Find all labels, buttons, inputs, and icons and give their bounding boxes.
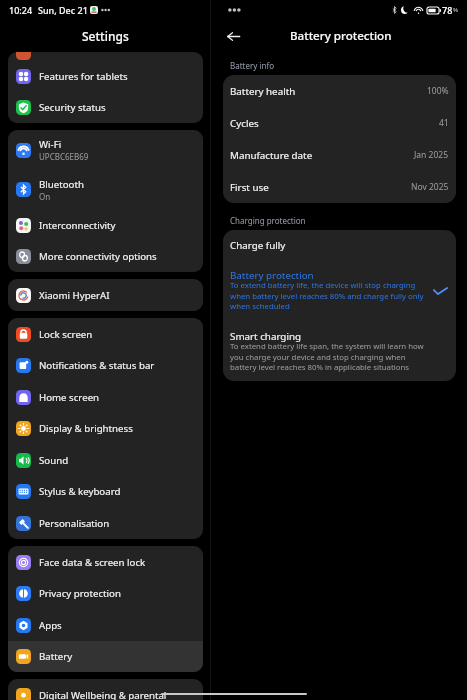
staticText: 100% xyxy=(427,85,449,97)
button[interactable]: Xiaomi HyperAI xyxy=(8,279,203,311)
button[interactable]: Battery xyxy=(8,641,203,672)
button[interactable]: Features for tablets xyxy=(8,60,203,92)
staticText: 41 xyxy=(439,117,449,129)
button[interactable]: First use xyxy=(223,171,456,203)
staticText: Charging protection xyxy=(230,215,306,226)
button[interactable]: Display & brightness xyxy=(8,413,203,444)
button[interactable]: Manufacture date xyxy=(223,139,456,171)
staticText: Settings xyxy=(82,28,129,44)
staticText: Personalisation xyxy=(39,517,110,530)
staticText: Interconnectivity xyxy=(39,219,116,232)
staticText: UPCBC6EB69 xyxy=(39,151,89,162)
staticText: Sound xyxy=(39,454,69,467)
staticText: Battery info xyxy=(230,60,275,71)
button[interactable]: More connectivity options xyxy=(8,241,203,272)
button[interactable] xyxy=(8,52,203,60)
staticText: Smart charging xyxy=(230,330,301,343)
button[interactable]: Face data & screen lock xyxy=(8,546,203,578)
staticText: Nov 2025 xyxy=(411,181,449,193)
staticText: 10:24 xyxy=(9,4,33,16)
staticText: Features for tablets xyxy=(39,70,128,83)
staticText: Stylus & keyboard xyxy=(39,485,121,498)
staticText: Xiaomi HyperAI xyxy=(39,289,110,302)
staticText: Apps xyxy=(39,619,62,632)
staticText: Lock screen xyxy=(39,328,93,341)
staticText: Wi-Fi xyxy=(39,138,62,151)
staticText: More connectivity options xyxy=(39,250,157,263)
staticText: First use xyxy=(230,181,269,194)
staticText: % xyxy=(453,6,458,14)
button[interactable]: Battery protection xyxy=(223,260,456,321)
button[interactable]: Bluetooth xyxy=(8,170,203,209)
staticText: Battery xyxy=(39,650,73,663)
staticText: Manufacture date xyxy=(230,149,313,162)
button[interactable]: Apps xyxy=(8,609,203,641)
button[interactable]: Sound xyxy=(8,444,203,476)
button[interactable]: Digital Wellbeing & parental xyxy=(8,679,203,700)
button[interactable]: Battery health xyxy=(223,75,456,107)
staticText: Security status xyxy=(39,101,106,114)
staticText: Battery protection xyxy=(290,28,392,44)
staticText: Jan 2025 xyxy=(414,149,449,161)
button[interactable]: Personalisation xyxy=(8,507,203,539)
staticText: Cycles xyxy=(230,117,259,130)
button[interactable]: Cycles xyxy=(223,107,456,139)
button[interactable]: Back xyxy=(222,25,244,47)
staticText: To extend battery life, the device will … xyxy=(230,280,424,311)
staticText: Sun, Dec 21 xyxy=(38,4,88,16)
staticText: Charge fully xyxy=(230,239,286,252)
button[interactable]: Interconnectivity xyxy=(8,209,203,241)
staticText: Battery protection xyxy=(230,269,314,282)
staticText: Privacy protection xyxy=(39,587,121,600)
staticText: Digital Wellbeing & parental xyxy=(39,689,167,700)
button[interactable]: Lock screen xyxy=(8,318,203,350)
staticText: Battery health xyxy=(230,85,296,98)
staticText: Bluetooth xyxy=(39,178,84,191)
button[interactable]: Privacy protection xyxy=(8,578,203,609)
button[interactable]: Smart charging xyxy=(223,321,456,381)
staticText: To extend battery life span, the system … xyxy=(230,341,424,372)
button[interactable]: Notifications & status bar xyxy=(8,350,203,381)
button[interactable]: Security status xyxy=(8,92,203,123)
staticText: Notifications & status bar xyxy=(39,359,155,372)
staticText: On xyxy=(39,191,51,202)
button[interactable]: Charge fully xyxy=(223,230,456,260)
button[interactable]: Home screen xyxy=(8,381,203,413)
staticText: Home screen xyxy=(39,391,100,404)
button[interactable]: Stylus & keyboard xyxy=(8,476,203,507)
staticText: 78 xyxy=(442,4,453,16)
staticText: Face data & screen lock xyxy=(39,556,146,569)
button[interactable]: Wi-Fi xyxy=(8,130,203,170)
staticText: Display & brightness xyxy=(39,422,133,435)
